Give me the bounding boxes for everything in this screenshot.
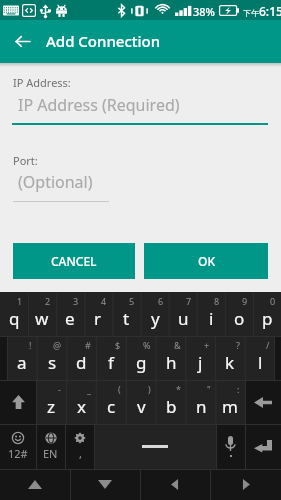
button[interactable]: Up [0, 469, 70, 500]
button[interactable]: * [156, 380, 186, 424]
staticText: Add Connection [46, 31, 161, 51]
staticText: t [123, 307, 130, 330]
staticText: * [176, 383, 181, 395]
staticText: 1 [17, 295, 23, 307]
staticText: ! [29, 339, 32, 351]
staticText: @ [53, 339, 62, 351]
staticText: r [94, 307, 102, 330]
button[interactable]: Down [70, 469, 140, 500]
button[interactable]: 3 [56, 292, 84, 336]
button[interactable]: : [215, 380, 245, 424]
button[interactable]: OK [144, 243, 268, 279]
button[interactable]: 5 [112, 292, 140, 336]
staticText: % [143, 339, 151, 351]
button[interactable]: Language [36, 424, 65, 469]
staticText: c [107, 395, 116, 418]
staticText: k [225, 351, 235, 374]
button[interactable]: 9 [225, 292, 253, 336]
staticText: a [17, 351, 27, 374]
staticText: IP Address (Required) [18, 94, 180, 116]
staticText: h [166, 351, 177, 374]
staticText: EN [43, 446, 58, 461]
button[interactable]: Enter [245, 424, 281, 469]
button[interactable]: 8 [197, 292, 225, 336]
staticText: z [47, 395, 55, 418]
staticText: g [136, 351, 147, 374]
staticText: # [85, 339, 91, 351]
button[interactable]: " [186, 380, 216, 424]
staticText: 4 [101, 295, 107, 307]
staticText: 6 [158, 295, 164, 307]
button[interactable]: Backspace [245, 380, 281, 424]
staticText: j [198, 351, 203, 374]
button[interactable]: _ [66, 380, 96, 424]
button[interactable]: Space [94, 424, 216, 469]
staticText: m [222, 395, 238, 418]
button[interactable]: % [126, 336, 156, 380]
staticText: 38% [193, 4, 215, 19]
staticText: 5 [129, 295, 135, 307]
staticText: w [35, 307, 49, 330]
staticText: b [166, 395, 177, 418]
staticText: e [65, 307, 75, 330]
button[interactable]: Symbols [0, 424, 36, 469]
staticText: 下午 [243, 8, 259, 18]
staticText: ( [118, 383, 121, 395]
button[interactable]: @ [37, 336, 67, 380]
button[interactable]: Shift [0, 380, 36, 424]
button[interactable]: 6 [141, 292, 169, 336]
button[interactable]: Settings [65, 424, 94, 469]
button[interactable]: - [36, 380, 66, 424]
staticText: 8 [214, 295, 220, 307]
staticText: / [266, 339, 270, 351]
staticText: + [204, 339, 210, 351]
button[interactable]: Left [140, 469, 210, 500]
staticText: u [178, 307, 189, 330]
button[interactable] [274, 336, 281, 380]
staticText: _ [87, 383, 91, 395]
staticText: 7 [186, 295, 192, 307]
staticText: 12# [8, 446, 28, 461]
staticText: : [237, 383, 240, 395]
staticText: s [48, 351, 57, 374]
button[interactable]: Voice input [216, 424, 245, 469]
button[interactable]: 0 [253, 292, 281, 336]
button[interactable]: # [66, 336, 96, 380]
button[interactable]: ! [7, 336, 37, 380]
staticText: Port: [13, 153, 38, 168]
button[interactable]: ) [126, 380, 156, 424]
button[interactable]: CANCEL [13, 243, 135, 279]
staticText: " [207, 383, 211, 395]
button[interactable]: Right [210, 469, 281, 500]
staticText: ? [236, 339, 240, 351]
staticText: - [58, 383, 61, 395]
staticText: q [9, 307, 20, 330]
button[interactable]: Back [0, 20, 44, 63]
button[interactable]: & [156, 336, 186, 380]
button[interactable]: ( [96, 380, 126, 424]
button[interactable]: / [245, 336, 275, 380]
button[interactable] [0, 336, 7, 380]
button[interactable]: + [185, 336, 215, 380]
staticText: ) [148, 383, 151, 395]
staticText: p [262, 307, 273, 330]
staticText: o [234, 307, 245, 330]
staticText: v [137, 395, 146, 418]
staticText: CANCEL [51, 253, 97, 269]
staticText: 9 [242, 295, 248, 307]
button[interactable]: 4 [84, 292, 112, 336]
staticText: 6:15 [259, 3, 281, 19]
staticText: 2 [45, 295, 51, 307]
staticText: 0 [270, 295, 276, 307]
staticText: 3 [73, 295, 79, 307]
button[interactable]: 1 [0, 292, 28, 336]
button[interactable]: ? [215, 336, 245, 380]
staticText: n [196, 395, 207, 418]
staticText: , [79, 446, 82, 461]
staticText: l [258, 351, 263, 374]
button[interactable]: $ [96, 336, 126, 380]
button[interactable]: 7 [169, 292, 197, 336]
button[interactable]: 2 [28, 292, 56, 336]
staticText: y [151, 307, 160, 330]
staticText: (Optional) [18, 171, 93, 193]
